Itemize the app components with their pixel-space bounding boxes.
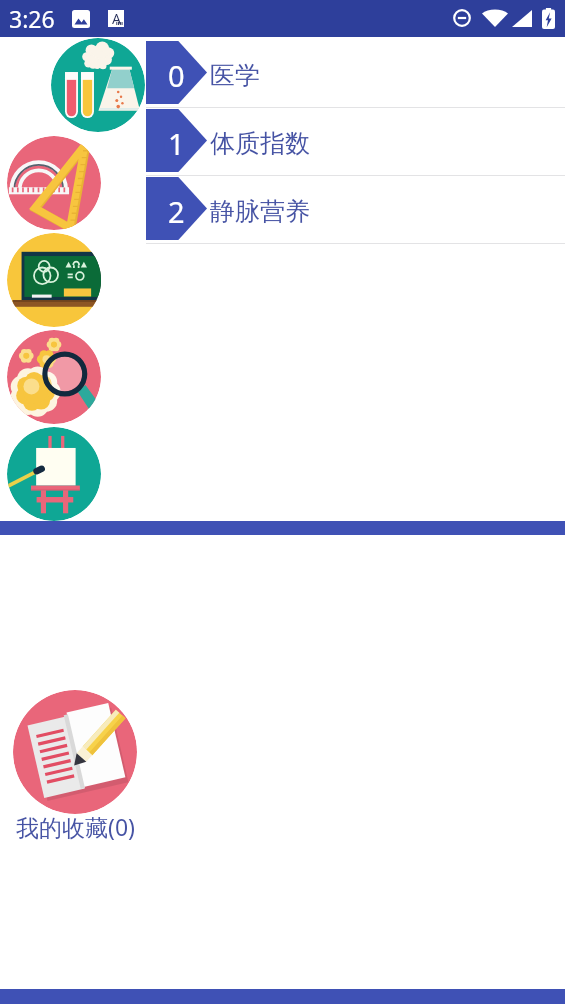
button[interactable]: 2 xyxy=(146,176,565,243)
staticText: 1 xyxy=(168,124,185,163)
button[interactable]: Blackboard xyxy=(7,233,101,327)
staticText: 0 xyxy=(168,56,185,95)
button[interactable]: Geometry xyxy=(7,136,101,230)
staticText: 静脉营养 xyxy=(210,196,310,227)
button[interactable]: Research xyxy=(7,330,101,424)
staticText: 体质指数 xyxy=(210,128,310,159)
button[interactable]: 0 xyxy=(146,40,565,107)
button[interactable]: 1 xyxy=(146,108,565,175)
button[interactable]: 我的收藏(0) xyxy=(13,690,137,845)
staticText: 我的收藏(0) xyxy=(16,811,135,842)
staticText: 2 xyxy=(168,192,185,231)
staticText: 3:26 xyxy=(9,3,55,34)
staticText: A xyxy=(112,9,121,26)
staticText: 医学 xyxy=(210,60,260,91)
button[interactable]: Chemistry xyxy=(51,38,145,132)
button[interactable]: Art xyxy=(7,427,101,521)
